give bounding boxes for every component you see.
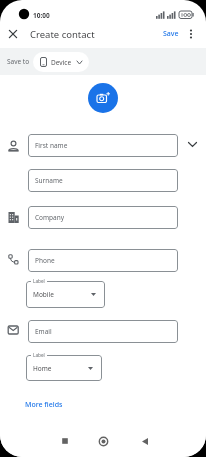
button[interactable]: More fields [20, 395, 68, 415]
button[interactable]: First name [28, 134, 178, 157]
staticText: 10:00 [33, 11, 50, 20]
staticText: Save [163, 29, 179, 39]
staticText: Label [33, 278, 45, 284]
button[interactable] [88, 83, 118, 113]
staticText: Create contact [30, 28, 95, 41]
button[interactable]: Company [28, 206, 178, 229]
staticText: Home [33, 364, 52, 373]
button[interactable]: Device [33, 52, 89, 72]
button[interactable]: Mobile [26, 281, 105, 308]
button[interactable]: Save [158, 26, 184, 42]
staticText: More fields [25, 400, 63, 410]
staticText: Email [35, 327, 52, 336]
staticText: Device [51, 58, 72, 67]
button[interactable] [184, 26, 198, 42]
button[interactable] [6, 27, 20, 41]
button[interactable] [132, 428, 158, 454]
button[interactable]: Home [26, 355, 102, 381]
staticText: Save to [7, 57, 30, 66]
staticText: Label [33, 352, 45, 358]
button[interactable] [90, 428, 116, 454]
button[interactable]: Surname [28, 169, 178, 192]
button[interactable]: Phone [28, 249, 178, 272]
staticText: Company [35, 213, 65, 222]
button[interactable] [52, 428, 78, 454]
staticText: Surname [35, 176, 63, 185]
staticText: First name [35, 141, 68, 150]
staticText: Phone [35, 256, 55, 265]
staticText: Mobile [33, 290, 54, 299]
button[interactable]: Email [28, 320, 178, 343]
